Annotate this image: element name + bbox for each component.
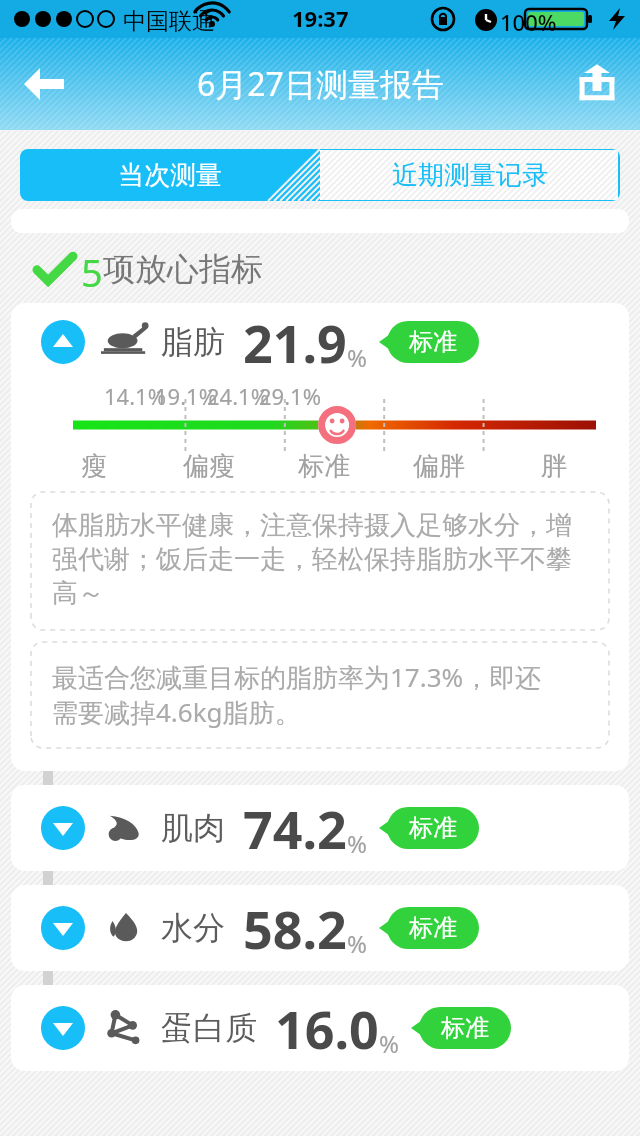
staticText: 29.1% [259, 381, 321, 407]
staticText: 14.1% [104, 381, 166, 407]
staticText: 21.9 [243, 307, 347, 378]
staticText: 标准 [409, 913, 457, 943]
staticText: 项放心指标 [103, 249, 263, 289]
button[interactable]: 肌肉 [11, 785, 629, 871]
staticText: 蛋白质 [161, 1008, 257, 1048]
staticText: 6月27日测量报告 [197, 62, 444, 106]
staticText: 近期测量记录 [392, 159, 548, 192]
staticText: 19:37 [292, 3, 349, 33]
staticText: 标准 [298, 450, 350, 483]
staticText: 脂肪 [161, 322, 225, 362]
staticText: 胖 [541, 450, 567, 483]
staticText: 74.2 [243, 793, 347, 864]
staticText: 58.2 [243, 893, 347, 964]
staticText: 16.0 [275, 993, 379, 1064]
button[interactable]: 近期测量记录 [320, 149, 620, 201]
staticText: 水分 [161, 908, 225, 948]
staticText: 体脂肪水平健康，注意保持摄入足够水分，增 强代谢；饭后走一走，轻松保持脂肪水平不… [52, 509, 572, 610]
staticText: 100% [500, 7, 557, 37]
button[interactable]: 水分 [11, 885, 629, 971]
button[interactable]: 蛋白质 [11, 985, 629, 1071]
staticText: 最适合您减重目标的脂肪率为17.3%，即还 需要减掉4.6kg脂肪。 [52, 659, 542, 729]
staticText: 瘦 [81, 450, 107, 483]
staticText: 偏胖 [413, 450, 465, 483]
staticText: % [347, 827, 367, 860]
staticText: 19.1% [155, 381, 217, 407]
staticText: 24.1% [207, 381, 269, 407]
staticText: 肌肉 [161, 808, 225, 848]
staticText: % [379, 1027, 399, 1060]
button[interactable]: 当次测量 [20, 149, 320, 201]
staticText: 标准 [409, 327, 457, 357]
staticText: 偏瘦 [183, 450, 235, 483]
staticText: 标准 [409, 813, 457, 843]
staticText: 当次测量 [118, 159, 222, 192]
staticText: 5 [81, 246, 103, 292]
staticText: 标准 [441, 1013, 489, 1043]
button[interactable]: 脂肪 [11, 303, 629, 771]
staticText: % [347, 927, 367, 960]
button[interactable]: Back [14, 54, 74, 114]
staticText: 中国联通 [123, 7, 215, 36]
staticText: % [347, 341, 367, 374]
button[interactable]: Share [568, 55, 626, 113]
